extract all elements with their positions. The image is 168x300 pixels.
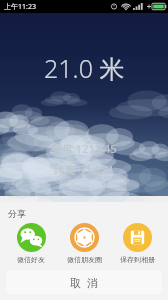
staticText: 上午11:23 [4, 2, 36, 12]
staticText: 经度 121.445 [51, 141, 117, 156]
staticText: 分享 [8, 208, 26, 219]
staticText: 纬度 31.024 [54, 162, 114, 177]
staticText: 微信好友 [17, 255, 45, 264]
staticText: 取 消 [70, 275, 98, 290]
button[interactable]: Save to album [111, 222, 163, 265]
staticText: 保存到相册 [120, 255, 155, 264]
staticText: 微信朋友圈 [67, 255, 102, 264]
button[interactable]: Share to WeChat Moments [58, 222, 110, 265]
button[interactable]: Share to WeChat friend [5, 222, 57, 265]
staticText: 21.0 米 [44, 51, 125, 85]
button[interactable]: 取 消 [6, 270, 162, 294]
